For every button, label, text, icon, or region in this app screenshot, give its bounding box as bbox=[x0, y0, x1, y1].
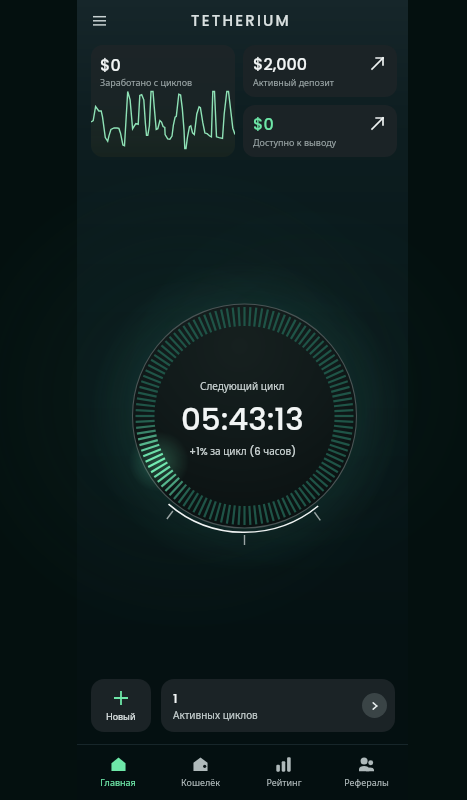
staticText: Активных циклов bbox=[173, 708, 258, 722]
staticText: $0 bbox=[100, 54, 121, 76]
staticText: Заработано с циклов bbox=[100, 76, 193, 89]
staticText: Кошелёк bbox=[181, 776, 220, 788]
button[interactable]: 1 bbox=[161, 679, 395, 732]
button[interactable]: Кошелёк bbox=[159, 745, 242, 800]
staticText: 05:43:13 bbox=[181, 397, 304, 440]
staticText: Главная bbox=[100, 776, 136, 788]
staticText: +1% за цикл (6 часов) bbox=[189, 444, 297, 458]
button[interactable]: Рефералы bbox=[325, 745, 408, 800]
staticText: Активный депозит bbox=[253, 76, 335, 89]
staticText: Доступно к выводу bbox=[253, 136, 337, 149]
staticText: Рефералы bbox=[344, 776, 389, 788]
button[interactable]: Menu bbox=[84, 5, 114, 35]
button[interactable]: Рейтинг bbox=[242, 745, 325, 800]
button[interactable]: $0 bbox=[91, 45, 235, 157]
staticText: TETHERIUM bbox=[191, 10, 292, 31]
staticText: $2,000 bbox=[253, 53, 308, 75]
button[interactable]: Новый bbox=[91, 679, 151, 732]
staticText: Новый bbox=[106, 710, 136, 722]
staticText: $0 bbox=[253, 113, 274, 135]
staticText: Следующий цикл bbox=[200, 379, 285, 393]
button[interactable]: Главная bbox=[77, 745, 159, 800]
staticText: Рейтинг bbox=[266, 776, 302, 788]
staticText: 1 bbox=[173, 689, 178, 707]
button[interactable]: $0 bbox=[243, 105, 397, 157]
button[interactable]: $2,000 bbox=[243, 45, 397, 97]
other: Open cycles bbox=[362, 693, 387, 718]
